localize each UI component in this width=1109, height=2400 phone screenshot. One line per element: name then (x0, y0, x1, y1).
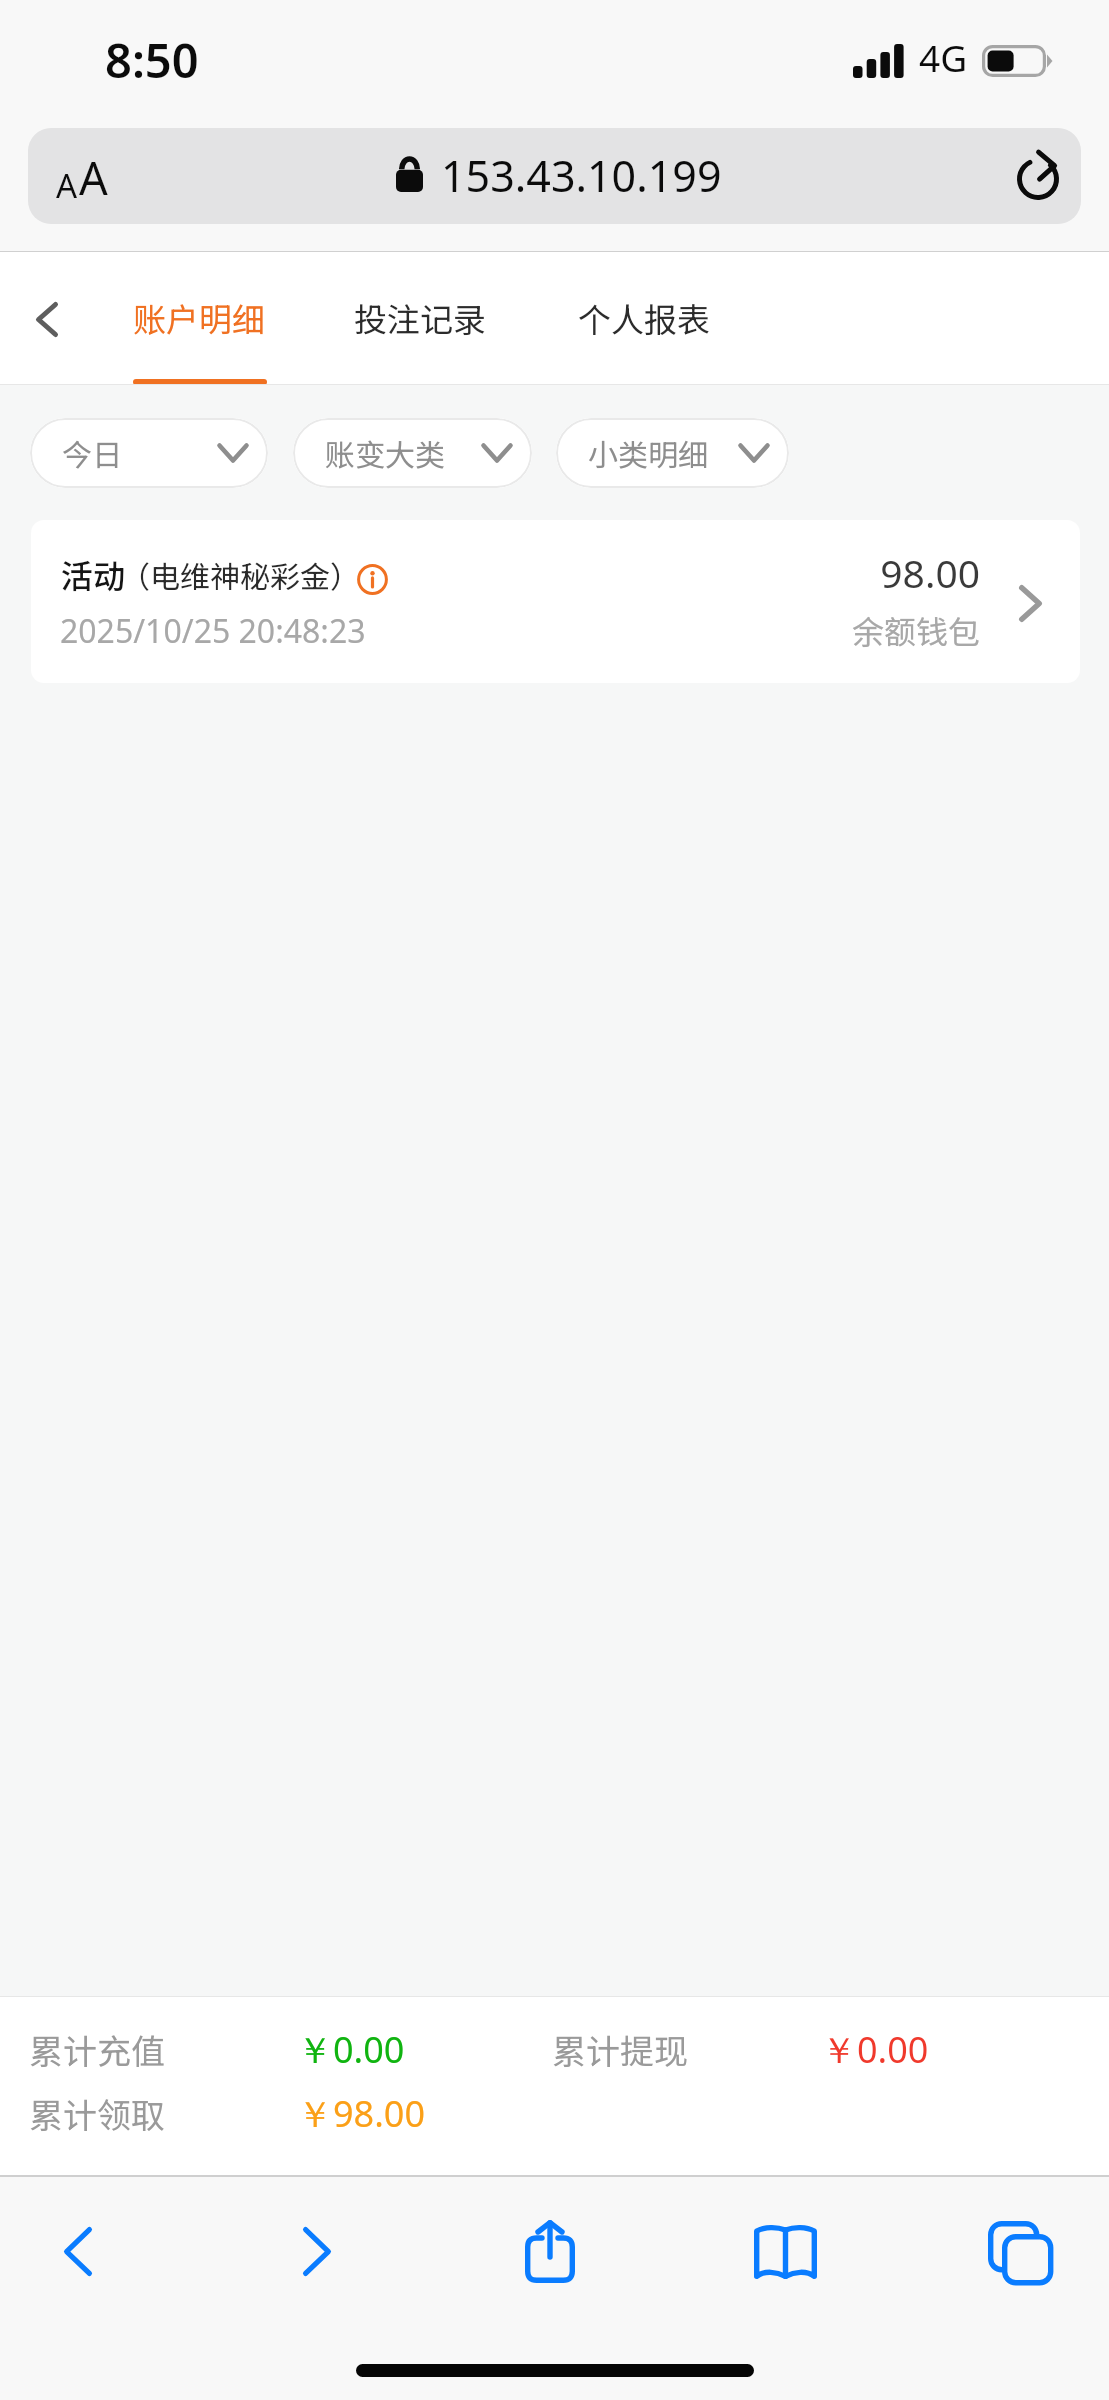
staticText: 累计领取 (29, 2089, 165, 2138)
button[interactable]: 小类明细 (556, 418, 789, 488)
staticText: ￥0.00 (821, 2025, 929, 2074)
button[interactable]: Text size options (48, 139, 116, 216)
button[interactable]: 投注记录 (354, 252, 488, 385)
button[interactable]: Address bar 153.43.10.199 (28, 128, 1081, 224)
staticText: 累计充值 (29, 2025, 165, 2074)
staticText: 余额钱包 (729, 607, 980, 653)
button[interactable]: Reload page (1013, 151, 1063, 201)
button[interactable]: 今日 (30, 418, 268, 488)
button[interactable]: Share (495, 2196, 605, 2306)
staticText: 153.43.10.199 (441, 146, 722, 205)
staticText: ￥98.00 (297, 2089, 426, 2138)
staticText: 小类明细 (588, 431, 708, 474)
staticText: 累计提现 (552, 2025, 688, 2074)
staticText: 2025/10/25 20:48:23 (60, 609, 366, 653)
staticText: 账变大类 (325, 431, 445, 474)
staticText: 活动 (61, 551, 126, 597)
staticText: 今日 (62, 431, 122, 474)
button[interactable]: 活动 (31, 520, 1080, 683)
staticText: 98.00 (729, 546, 980, 599)
button[interactable]: Back (2, 274, 92, 364)
button[interactable]: 个人报表 (578, 252, 712, 385)
button[interactable]: Back (23, 2196, 133, 2306)
button[interactable]: Forward (262, 2196, 372, 2306)
staticText: 个人报表 (578, 294, 710, 342)
button[interactable]: Bookmarks (730, 2196, 840, 2306)
staticText: 8:50 (105, 28, 199, 92)
staticText: A (79, 147, 108, 208)
staticText: （电维神秘彩金） (120, 553, 360, 596)
staticText: ￥0.00 (297, 2025, 405, 2074)
staticText: 账户明细 (133, 294, 265, 342)
button[interactable]: Tabs (964, 2196, 1074, 2306)
button[interactable]: 账变大类 (293, 418, 532, 488)
staticText: 投注记录 (354, 294, 486, 342)
staticText: A (56, 163, 78, 208)
button[interactable]: 账户明细 (133, 252, 267, 385)
staticText: 4G (919, 32, 968, 82)
